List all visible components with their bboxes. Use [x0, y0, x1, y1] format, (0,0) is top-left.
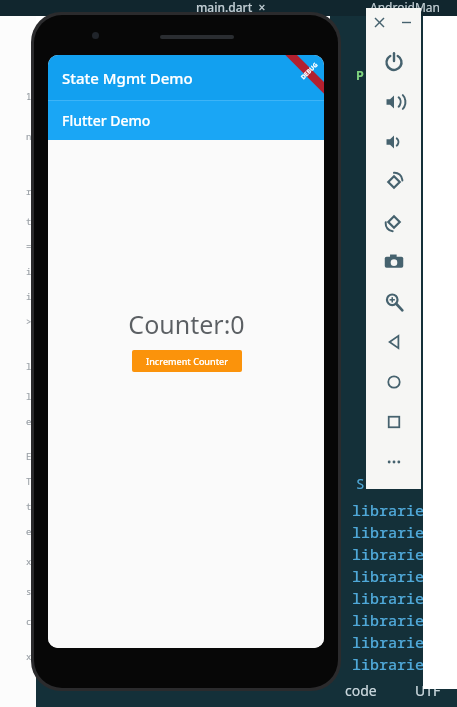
- button[interactable]: Zoom: [366, 282, 421, 322]
- staticText: x: [26, 555, 32, 567]
- staticText: e: [26, 525, 32, 537]
- staticText: c: [26, 615, 32, 627]
- staticText: libraries: [352, 654, 434, 674]
- staticText: l: [26, 360, 32, 372]
- button[interactable]: Rotate right: [366, 202, 421, 242]
- staticText: AndroidMan: [370, 0, 440, 15]
- staticText: >: [26, 315, 32, 327]
- staticText: T: [26, 475, 32, 487]
- staticText: E: [26, 450, 32, 462]
- button[interactable]: Home: [366, 362, 421, 402]
- staticText: libraries: [352, 588, 434, 608]
- button[interactable]: Overview: [366, 402, 421, 442]
- button[interactable]: Volume up: [366, 82, 421, 122]
- staticText: =: [26, 240, 32, 252]
- staticText: UTF: [415, 681, 441, 700]
- button[interactable]: Rotate left: [366, 162, 421, 202]
- staticText: libraries: [352, 610, 434, 630]
- staticText: code: [345, 681, 377, 700]
- staticText: t: [26, 500, 32, 512]
- staticText: r: [26, 185, 32, 197]
- staticText: Increment Counter: [146, 355, 229, 367]
- staticText: main.dart ×: [196, 0, 266, 15]
- staticText: libraries: [352, 544, 434, 564]
- staticText: l: [26, 390, 32, 402]
- button[interactable]: Flutter Demo: [48, 101, 324, 140]
- button[interactable]: Close: [366, 8, 393, 36]
- button[interactable]: Increment Counter: [132, 350, 242, 372]
- button[interactable]: Power: [366, 42, 421, 82]
- staticText: i: [26, 290, 32, 302]
- staticText: libraries: [352, 566, 434, 586]
- staticText: x: [26, 650, 32, 662]
- staticText: DEBUG: [299, 61, 320, 81]
- staticText: S: [356, 474, 365, 493]
- staticText: Flutter Demo: [62, 111, 151, 130]
- staticText: P: [356, 66, 364, 84]
- staticText: n: [26, 130, 32, 142]
- staticText: libraries: [352, 500, 434, 520]
- staticText: i: [26, 265, 32, 277]
- button[interactable]: Minimize: [393, 8, 420, 36]
- staticText: State Mgmt Demo: [62, 68, 193, 88]
- button[interactable]: More: [366, 442, 421, 482]
- button[interactable]: State Mgmt Demo: [48, 55, 324, 100]
- button[interactable]: Back: [366, 322, 421, 362]
- button[interactable]: Volume down: [366, 122, 421, 162]
- staticText: Counter:0: [128, 307, 245, 341]
- staticText: libraries: [352, 632, 434, 652]
- staticText: libraries: [352, 522, 434, 542]
- button[interactable]: Screenshot: [366, 242, 421, 282]
- staticText: s: [26, 585, 32, 597]
- staticText: 13: [26, 90, 37, 102]
- staticText: e: [26, 415, 32, 427]
- staticText: t: [26, 215, 32, 227]
